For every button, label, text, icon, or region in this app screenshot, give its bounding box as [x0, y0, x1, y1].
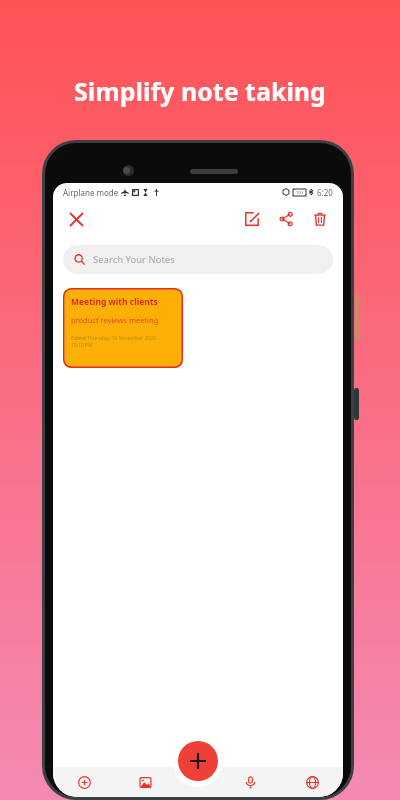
staticText: Search Your Notes: [93, 253, 175, 266]
button[interactable]: Add note: [71, 769, 97, 795]
staticText: 6:20: [317, 187, 333, 198]
staticText: 100: [296, 190, 303, 195]
button[interactable]: Search Your Notes: [63, 245, 333, 274]
button[interactable]: Close: [63, 206, 89, 232]
button[interactable]: Meeting with clients: [63, 288, 183, 368]
staticText: Airplane mode: [63, 187, 119, 198]
staticText: product reviews meeting: [71, 315, 159, 325]
button[interactable]: Delete: [307, 206, 333, 232]
staticText: Simplify note taking: [0, 74, 400, 108]
button[interactable]: Voice note: [237, 769, 263, 795]
button[interactable]: New note: [178, 741, 218, 781]
button[interactable]: Web: [299, 769, 325, 795]
staticText: Meeting with clients: [71, 296, 158, 308]
button[interactable]: Image: [132, 769, 158, 795]
button[interactable]: Share: [273, 206, 299, 232]
button[interactable]: Edit: [239, 206, 265, 232]
staticText: Edited Thursday, 19 November 2020 10:10 …: [71, 335, 156, 349]
